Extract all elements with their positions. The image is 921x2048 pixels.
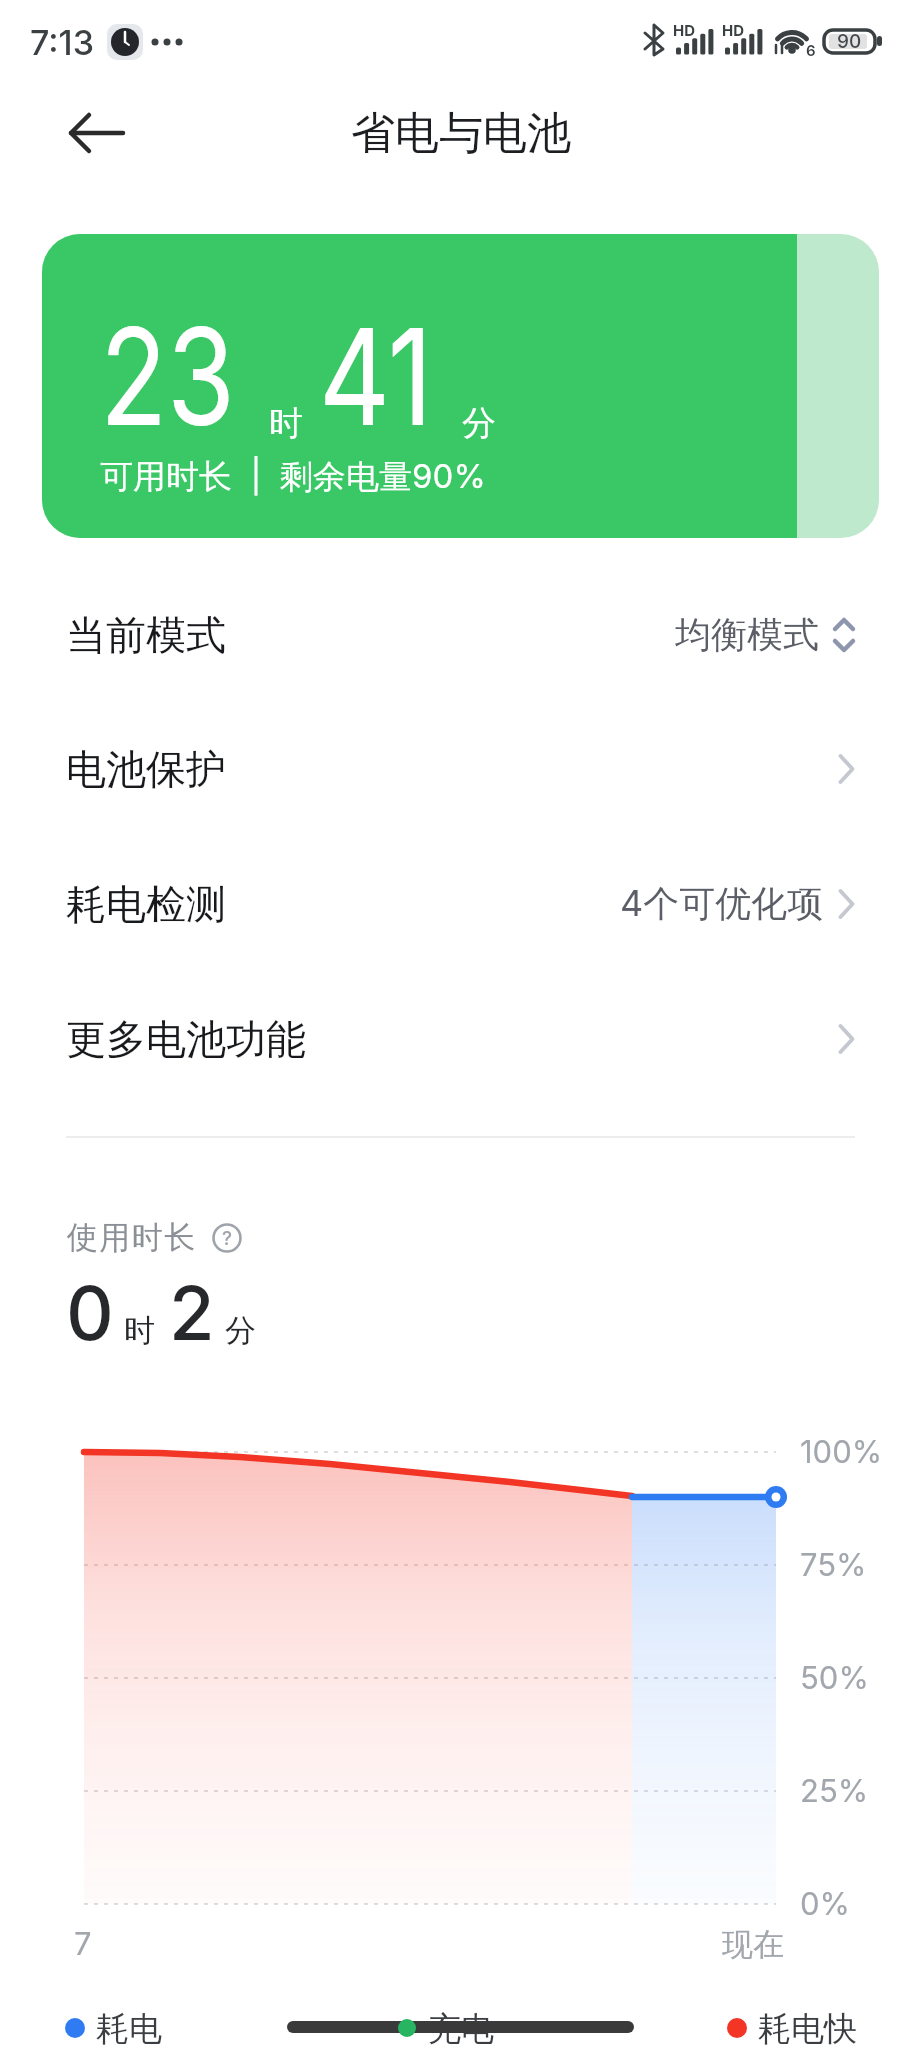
staticText: 充电	[428, 2008, 494, 2048]
staticText: 100%	[800, 1433, 883, 1471]
staticText: 省电与电池	[351, 106, 571, 161]
staticText: 时	[124, 1311, 155, 1350]
staticText: 耗电检测	[66, 879, 226, 929]
button[interactable]: 耗电检测	[0, 836, 921, 971]
staticText: 均衡模式	[675, 612, 819, 657]
staticText: 时	[269, 402, 303, 445]
button[interactable]	[44, 100, 150, 166]
staticText: 分	[462, 402, 496, 445]
staticText: HD	[673, 21, 696, 39]
staticText: 23	[100, 295, 235, 455]
staticText: 4个可优化项	[620, 881, 824, 927]
staticText: 50%	[800, 1659, 869, 1697]
staticText: 耗电	[96, 2008, 162, 2048]
staticText: 电池保护	[66, 744, 226, 794]
staticText: 7	[74, 1925, 92, 1963]
button[interactable]: 23	[42, 234, 879, 538]
staticText: 当前模式	[66, 610, 226, 660]
staticText: 分	[225, 1311, 256, 1350]
button[interactable]: 更多电池功能	[0, 971, 921, 1106]
staticText: 41	[319, 295, 433, 455]
staticText: 耗电快	[758, 2008, 857, 2048]
staticText: 90	[837, 30, 862, 53]
staticText: 0%	[800, 1885, 850, 1923]
staticText: 7:13	[30, 22, 95, 63]
staticText: ?	[222, 1227, 233, 1250]
staticText: 2	[169, 1268, 215, 1358]
staticText: 可用时长 | 剩余电量90%	[100, 456, 486, 498]
staticText: 75%	[800, 1546, 867, 1584]
button[interactable]: 电池保护	[0, 701, 921, 836]
staticText: 25%	[800, 1772, 869, 1810]
staticText: HD	[722, 21, 745, 39]
staticText: 更多电池功能	[66, 1014, 306, 1064]
button[interactable]: 当前模式	[0, 567, 921, 702]
staticText: 使用时长	[66, 1218, 196, 1257]
staticText: 现在	[722, 1925, 784, 1964]
staticText: 0	[66, 1268, 114, 1358]
staticText: 6	[806, 41, 816, 59]
